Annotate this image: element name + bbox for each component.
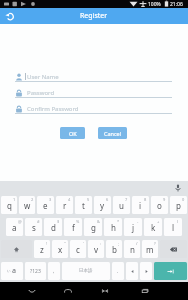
- button[interactable]: t: [75, 196, 92, 214]
- button[interactable]: h: [104, 218, 122, 236]
- staticText: ": [64, 241, 66, 246]
- staticText: n: [130, 244, 135, 255]
- button[interactable]: ?123: [25, 262, 46, 280]
- staticText: :: [100, 241, 102, 246]
- button[interactable]: s: [25, 218, 42, 236]
- button[interactable]: q: [1, 196, 17, 214]
- button[interactable]: Space: [62, 262, 110, 280]
- button[interactable]: u: [113, 196, 130, 214]
- staticText: &: [97, 219, 100, 224]
- staticText: w: [24, 200, 31, 211]
- staticText: k: [151, 222, 156, 233]
- staticText: %: [76, 219, 80, 224]
- staticText: r: [63, 200, 67, 211]
- button[interactable]: f: [64, 218, 82, 236]
- button[interactable]: Recents: [135, 282, 155, 300]
- button[interactable]: e: [37, 196, 54, 214]
- staticText: $: [57, 219, 60, 224]
- button[interactable]: n: [124, 240, 140, 258]
- staticText: Cancel: [104, 130, 122, 137]
- staticText: ?123: [30, 268, 41, 275]
- staticText: 0: [182, 197, 185, 202]
- staticText: y: [100, 200, 105, 211]
- button[interactable]: i: [132, 196, 149, 214]
- staticText: 100%: [148, 1, 161, 8]
- button[interactable]: k: [144, 218, 162, 236]
- button[interactable]: Right: [140, 262, 152, 280]
- staticText: l: [172, 222, 175, 233]
- staticText: s: [32, 222, 36, 233]
- staticText: x: [58, 244, 63, 255]
- button[interactable]: Voice input: [172, 182, 184, 194]
- button[interactable]: Screenshot: [95, 282, 115, 300]
- button[interactable]: Switch language: [1, 262, 23, 280]
- staticText: Password: [27, 89, 55, 97]
- staticText: い: [7, 269, 11, 273]
- staticText: 5: [87, 197, 90, 202]
- staticText: Register: [80, 11, 108, 21]
- button[interactable]: Home: [58, 282, 78, 300]
- staticText: p: [176, 200, 181, 211]
- button[interactable]: Delete: [160, 240, 187, 258]
- button[interactable]: c: [70, 240, 86, 258]
- staticText: ?: [154, 241, 156, 246]
- button[interactable]: a: [6, 218, 23, 236]
- button[interactable]: m: [142, 240, 158, 258]
- staticText: 8: [144, 197, 147, 202]
- button[interactable]: y: [94, 196, 111, 214]
- staticText: .: [117, 268, 119, 275]
- staticText: d: [51, 222, 56, 233]
- button[interactable]: w: [19, 196, 35, 214]
- button[interactable]: g: [84, 218, 102, 236]
- staticText: h: [111, 222, 116, 233]
- staticText: 1: [13, 197, 16, 202]
- staticText: g: [91, 222, 96, 233]
- button[interactable]: x: [52, 240, 68, 258]
- staticText: /: [136, 241, 138, 246]
- staticText: @: [18, 219, 22, 224]
- button[interactable]: z: [34, 240, 50, 258]
- staticText: c: [76, 244, 80, 255]
- button[interactable]: o: [151, 196, 168, 214]
- button[interactable]: Back: [22, 282, 42, 300]
- staticText: +: [157, 219, 160, 224]
- button[interactable]: p: [170, 196, 187, 214]
- staticText: *: [117, 219, 120, 224]
- staticText: !: [46, 241, 48, 246]
- staticText: ': [83, 241, 84, 246]
- button[interactable]: Back: [0, 8, 18, 24]
- staticText: a: [12, 222, 17, 233]
- staticText: 2: [31, 197, 34, 202]
- staticText: 4: [68, 197, 71, 202]
- button[interactable]: j: [124, 218, 142, 236]
- button[interactable]: Shift: [1, 240, 32, 258]
- staticText: 日本語: [79, 268, 93, 274]
- button[interactable]: r: [56, 196, 73, 214]
- staticText: e: [43, 200, 48, 211]
- button[interactable]: l: [164, 218, 182, 236]
- staticText: z: [40, 244, 44, 255]
- staticText: OK: [69, 130, 77, 137]
- button[interactable]: .: [112, 262, 124, 280]
- button[interactable]: ,: [48, 262, 60, 280]
- staticText: u: [119, 200, 124, 211]
- button[interactable]: Left: [126, 262, 138, 280]
- staticText: 21:06: [170, 1, 183, 8]
- staticText: ,: [53, 268, 55, 275]
- staticText: i: [139, 200, 142, 211]
- staticText: q: [7, 200, 12, 211]
- staticText: o: [157, 200, 162, 211]
- staticText: ;: [118, 241, 120, 246]
- staticText: Confirm Password: [27, 105, 79, 113]
- button[interactable]: b: [106, 240, 122, 258]
- staticText: 3: [49, 197, 52, 202]
- button[interactable]: OK: [60, 127, 85, 139]
- button[interactable]: d: [44, 218, 62, 236]
- button[interactable]: Cancel: [98, 127, 127, 139]
- staticText: f: [72, 222, 75, 233]
- staticText: 7: [125, 197, 128, 202]
- button[interactable]: Enter: [154, 262, 187, 280]
- staticText: 9: [163, 197, 166, 202]
- staticText: v: [94, 244, 99, 255]
- button[interactable]: v: [88, 240, 104, 258]
